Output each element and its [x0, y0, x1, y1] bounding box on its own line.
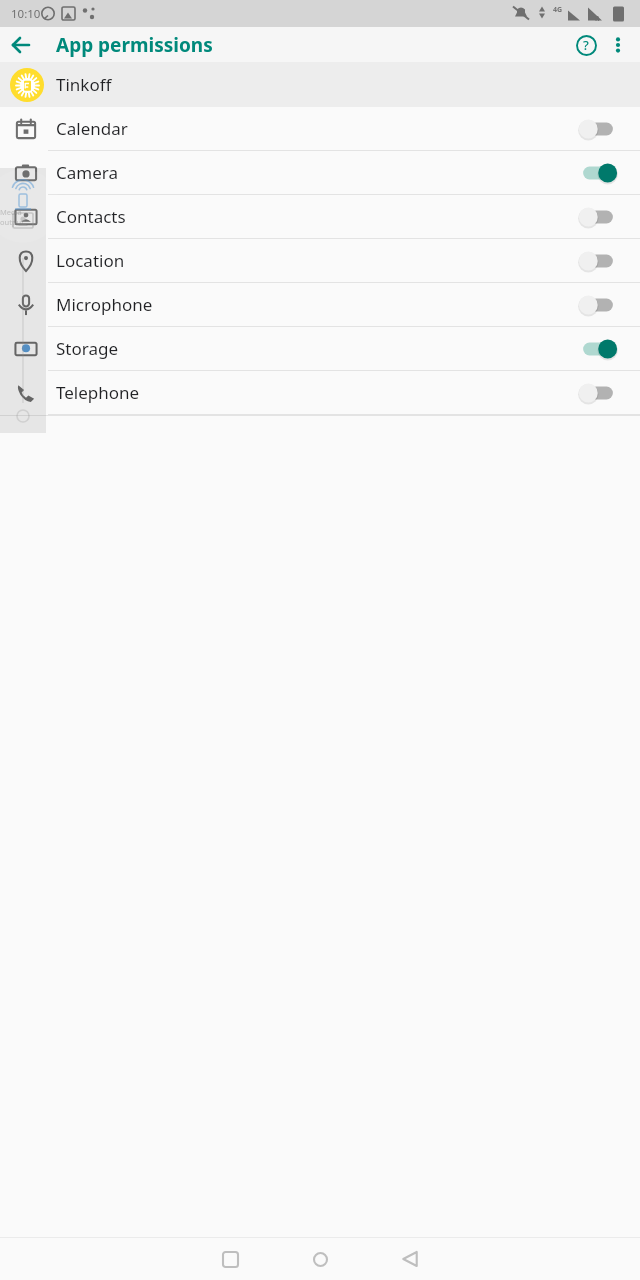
- button[interactable]: Camera permission toggle: [574, 157, 622, 189]
- button[interactable]: Microphone permission toggle: [574, 289, 622, 321]
- button[interactable]: Contacts permission toggle: [574, 201, 622, 233]
- staticText: Tinkoff: [56, 73, 112, 96]
- button[interactable]: Home: [297, 1238, 343, 1280]
- button[interactable]: Recents: [207, 1238, 253, 1280]
- button[interactable]: More options: [602, 29, 634, 61]
- staticText: Calendar: [56, 117, 128, 140]
- button[interactable]: Telephone permission toggle: [574, 377, 622, 409]
- staticText: Camera: [56, 161, 118, 184]
- staticText: Media output: [0, 207, 46, 227]
- button[interactable]: Help: [570, 29, 602, 61]
- staticText: Contacts: [56, 205, 126, 228]
- staticText: 10:10: [11, 6, 41, 22]
- staticText: 4G: [553, 5, 563, 15]
- staticText: Storage: [56, 337, 119, 360]
- button[interactable]: Contacts: [0, 195, 640, 238]
- button[interactable]: Calendar permission toggle: [574, 113, 622, 145]
- button[interactable]: Telephone: [0, 371, 640, 414]
- staticText: ?: [583, 36, 589, 54]
- button[interactable]: Media output: [0, 168, 46, 433]
- button[interactable]: Camera: [0, 151, 640, 194]
- button[interactable]: Location: [0, 239, 640, 282]
- button[interactable]: Storage: [0, 327, 640, 370]
- button[interactable]: Location permission toggle: [574, 245, 622, 277]
- staticText: R: [595, 14, 600, 23]
- button[interactable]: Tinkoff: [0, 62, 640, 107]
- staticText: Location: [56, 249, 125, 272]
- staticText: App permissions: [56, 32, 213, 58]
- staticText: Telephone: [56, 381, 140, 404]
- staticText: Microphone: [56, 293, 153, 316]
- button[interactable]: Microphone: [0, 283, 640, 326]
- button[interactable]: Back: [387, 1238, 433, 1280]
- button[interactable]: Storage permission toggle: [574, 333, 622, 365]
- button[interactable]: Back: [9, 33, 33, 57]
- button[interactable]: Calendar: [0, 107, 640, 150]
